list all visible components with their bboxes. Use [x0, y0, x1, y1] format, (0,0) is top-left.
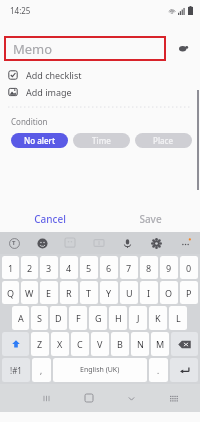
- button[interactable]: Switch keyboard: [153, 384, 196, 412]
- button[interactable]: Shift: [2, 332, 29, 356]
- staticText: Q: [7, 287, 15, 299]
- button[interactable]: Z: [31, 332, 49, 356]
- button[interactable]: C: [71, 332, 89, 356]
- button[interactable]: S: [31, 306, 48, 330]
- staticText: C: [77, 338, 83, 350]
- button[interactable]: L: [169, 306, 187, 330]
- button[interactable]: R: [60, 281, 78, 304]
- staticText: 9: [166, 262, 172, 274]
- staticText: L: [176, 312, 181, 324]
- button[interactable]: T: [80, 281, 98, 304]
- staticText: Y: [106, 287, 112, 299]
- button[interactable]: GIF: [84, 232, 113, 254]
- staticText: Add image: [26, 86, 72, 98]
- button[interactable]: N: [131, 332, 149, 356]
- button[interactable]: ,: [32, 358, 51, 382]
- button[interactable]: Hide keyboard: [110, 384, 153, 412]
- button[interactable]: H: [109, 306, 127, 330]
- button[interactable]: Home: [67, 384, 110, 412]
- button[interactable]: Save: [100, 205, 200, 232]
- button[interactable]: Recents: [25, 384, 67, 412]
- button[interactable]: U: [120, 281, 138, 304]
- staticText: H: [115, 312, 122, 324]
- button[interactable]: 3: [40, 256, 58, 279]
- button[interactable]: K: [149, 306, 167, 330]
- staticText: J: [137, 312, 140, 324]
- button[interactable]: .: [149, 358, 168, 382]
- staticText: F: [76, 312, 81, 324]
- staticText: Memo: [13, 40, 53, 58]
- button[interactable]: 4: [60, 256, 78, 279]
- staticText: X: [57, 338, 63, 350]
- button[interactable]: 7: [120, 256, 138, 279]
- button[interactable]: Settings: [142, 232, 171, 254]
- button[interactable]: Stickers: [56, 232, 84, 254]
- button[interactable]: 2: [21, 256, 38, 279]
- staticText: D: [55, 312, 62, 324]
- button[interactable]: Time: [73, 133, 130, 148]
- button[interactable]: Voice input: [166, 36, 200, 61]
- staticText: K: [155, 312, 161, 324]
- staticText: W: [25, 287, 34, 299]
- button[interactable]: E: [40, 281, 58, 304]
- button[interactable]: Translate: [0, 232, 28, 254]
- button[interactable]: F: [69, 306, 87, 330]
- button[interactable]: Q: [2, 281, 19, 304]
- button[interactable]: 8: [140, 256, 158, 279]
- staticText: .: [157, 365, 160, 376]
- button[interactable]: Emoji: [28, 232, 56, 254]
- staticText: 4: [66, 262, 72, 274]
- button[interactable]: W: [21, 281, 38, 304]
- staticText: 8: [146, 262, 152, 274]
- button[interactable]: P: [180, 281, 198, 304]
- button[interactable]: G: [89, 306, 107, 330]
- button[interactable]: Add image: [0, 84, 200, 99]
- button[interactable]: English (UK): [53, 358, 147, 382]
- button[interactable]: Y: [100, 281, 118, 304]
- button[interactable]: 0: [180, 256, 198, 279]
- staticText: T: [12, 239, 16, 247]
- staticText: R: [66, 287, 72, 299]
- staticText: Add checklist: [26, 69, 82, 81]
- button[interactable]: Cancel: [0, 205, 100, 232]
- button[interactable]: X: [51, 332, 69, 356]
- staticText: I: [147, 287, 151, 299]
- button[interactable]: Voice input: [113, 232, 142, 254]
- staticText: S: [37, 312, 42, 324]
- staticText: No alert: [24, 135, 55, 146]
- staticText: U: [126, 287, 133, 299]
- button[interactable]: 1: [2, 256, 19, 279]
- button[interactable]: I: [140, 281, 158, 304]
- staticText: B: [117, 338, 123, 350]
- staticText: 6: [106, 262, 112, 274]
- button[interactable]: Enter: [170, 358, 198, 382]
- button[interactable]: 5: [80, 256, 98, 279]
- staticText: P: [186, 287, 192, 299]
- button[interactable]: 9: [160, 256, 178, 279]
- button[interactable]: B: [111, 332, 129, 356]
- button[interactable]: No alert: [11, 133, 68, 148]
- button[interactable]: Place: [135, 133, 192, 148]
- button[interactable]: Backspace: [171, 332, 198, 356]
- button[interactable]: D: [50, 306, 67, 330]
- staticText: Condition: [11, 116, 48, 127]
- button[interactable]: M: [151, 332, 169, 356]
- staticText: M: [156, 338, 165, 350]
- button[interactable]: Add checklist: [0, 67, 200, 82]
- button[interactable]: J: [129, 306, 147, 330]
- staticText: 0: [186, 262, 192, 274]
- button[interactable]: More options: [171, 232, 200, 254]
- staticText: 2: [27, 262, 33, 274]
- staticText: Save: [139, 212, 162, 226]
- staticText: N: [137, 338, 144, 350]
- staticText: !#1: [10, 365, 22, 376]
- button[interactable]: O: [160, 281, 178, 304]
- staticText: Cancel: [34, 212, 66, 226]
- button[interactable]: !#1: [2, 358, 30, 382]
- button[interactable]: 6: [100, 256, 118, 279]
- button[interactable]: V: [91, 332, 109, 356]
- button[interactable]: Memo: [4, 36, 166, 61]
- staticText: V: [97, 338, 103, 350]
- button[interactable]: A: [12, 306, 29, 330]
- staticText: 7: [126, 262, 132, 274]
